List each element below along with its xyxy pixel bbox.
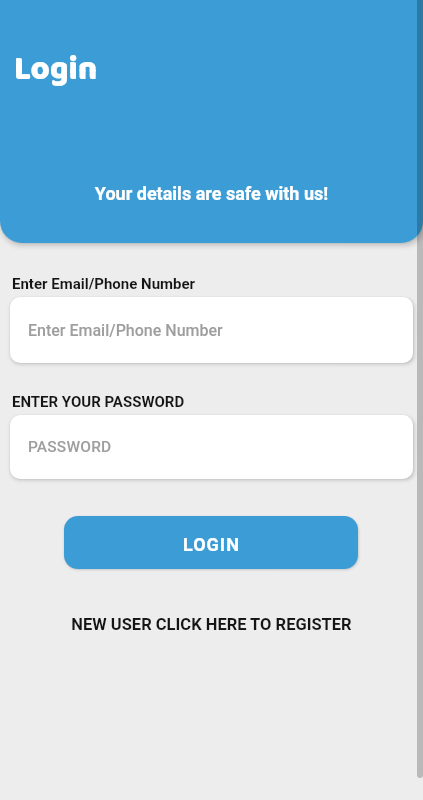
button[interactable]: LOGIN (64, 516, 358, 569)
staticText: LOGIN (183, 534, 240, 555)
staticText: Login (14, 43, 98, 96)
staticText: Enter Email/Phone Number (28, 321, 223, 340)
staticText: ENTER YOUR PASSWORD (12, 393, 185, 411)
button[interactable]: NEW USER CLICK HERE TO REGISTER (0, 615, 423, 634)
button[interactable]: Enter Email/Phone Number (10, 297, 413, 363)
staticText: PASSWORD (28, 438, 112, 456)
staticText: Enter Email/Phone Number (12, 275, 196, 293)
button[interactable]: PASSWORD (10, 415, 413, 479)
staticText: Your details are safe with us! (0, 183, 423, 204)
